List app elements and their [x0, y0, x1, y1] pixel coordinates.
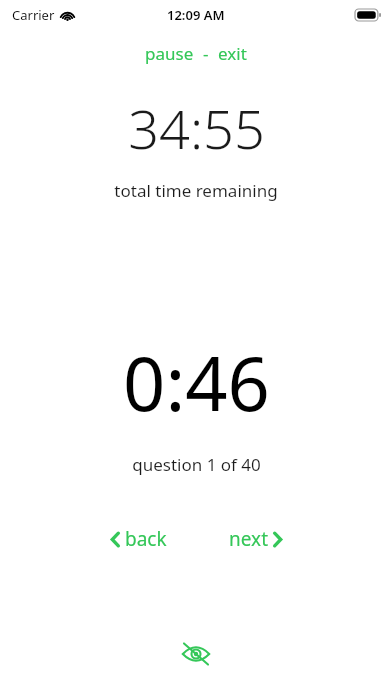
- staticText: 0:46: [123, 332, 270, 433]
- staticText: 34:55: [128, 91, 265, 165]
- staticText: total time remaining: [114, 179, 278, 202]
- button[interactable]: next: [221, 520, 290, 558]
- button[interactable]: Hide timer: [172, 634, 220, 674]
- button[interactable]: exit: [214, 38, 251, 69]
- button[interactable]: back: [103, 520, 175, 558]
- staticText: next: [229, 526, 268, 552]
- staticText: exit: [218, 42, 247, 65]
- staticText: back: [125, 526, 167, 552]
- staticText: pause: [145, 42, 194, 65]
- button[interactable]: pause: [141, 38, 198, 69]
- staticText: Carrier: [12, 6, 55, 24]
- staticText: question 1 of 40: [132, 453, 261, 476]
- staticText: 12:09 AM: [167, 6, 225, 24]
- staticText: -: [203, 42, 209, 65]
